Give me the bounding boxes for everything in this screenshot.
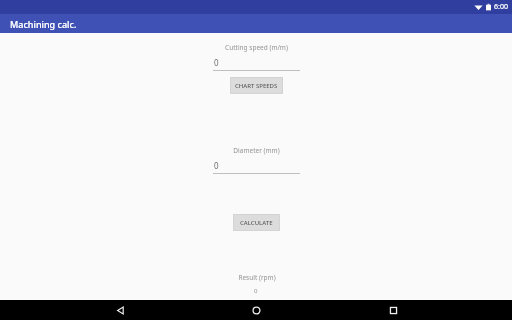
staticText: 0 [254, 287, 258, 295]
staticText: 0 [214, 57, 219, 68]
button[interactable]: CHART SPEEDS [230, 77, 283, 94]
staticText: 0 [214, 160, 219, 171]
staticText: 6:00 [494, 2, 508, 12]
button[interactable]: CALCULATE [233, 214, 280, 231]
staticText: Machining calc. [10, 18, 77, 30]
button[interactable]: Recent apps [376, 300, 410, 320]
staticText: Result (rpm) [238, 273, 276, 282]
staticText: Cutting speed (m/m) [225, 43, 288, 52]
button[interactable]: 0 [213, 160, 300, 174]
button[interactable]: Back [103, 300, 137, 320]
staticText: Diameter (mm) [233, 146, 280, 155]
button[interactable]: 0 [213, 57, 300, 71]
staticText: CALCULATE [240, 219, 273, 227]
staticText: CHART SPEEDS [235, 82, 278, 90]
button[interactable]: Home [239, 300, 273, 320]
